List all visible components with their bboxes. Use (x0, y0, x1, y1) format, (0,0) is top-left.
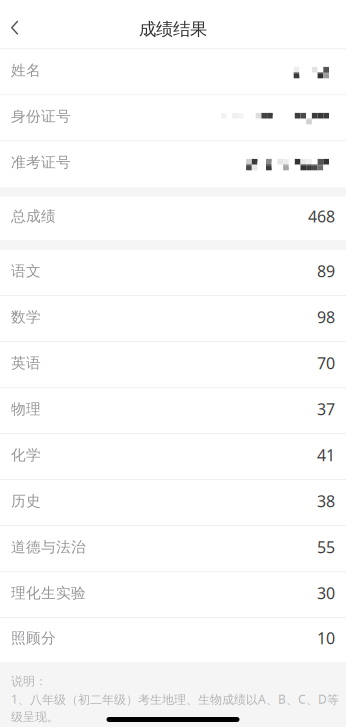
button[interactable]: 语文 (0, 250, 346, 296)
button[interactable]: 总成绩 (0, 196, 346, 240)
staticText: 说明： (11, 674, 47, 689)
staticText: 总成绩 (11, 207, 56, 225)
staticText: 化学 (11, 446, 41, 464)
button[interactable]: 历史 (0, 480, 346, 526)
button[interactable]: 物理 (0, 388, 346, 434)
staticText: 理化生实验 (11, 584, 86, 602)
staticText: 89 (317, 260, 335, 282)
button[interactable]: 化学 (0, 434, 346, 480)
staticText: 55 (317, 536, 335, 558)
staticText: 30 (317, 582, 335, 604)
staticText: 98 (317, 306, 335, 328)
staticText: 10 (317, 627, 335, 649)
staticText: 物理 (11, 400, 41, 418)
staticText: 道德与法治 (11, 538, 86, 556)
button[interactable]: 姓名 (0, 49, 346, 95)
staticText: 成绩结果 (139, 18, 207, 40)
staticText: 姓名 (11, 61, 41, 79)
staticText: 70 (317, 352, 335, 374)
staticText: 照顾分 (11, 629, 56, 647)
button[interactable]: Back (0, 9, 39, 40)
staticText: 41 (317, 444, 335, 466)
staticText: 语文 (11, 262, 41, 280)
button[interactable]: 准考证号 (0, 141, 346, 187)
button[interactable]: 英语 (0, 342, 346, 388)
staticText: 身份证号 (11, 107, 71, 125)
staticText: 1、八年级（初二年级）考生地理、生物成绩以A、B、C、D等 (11, 691, 339, 707)
button[interactable]: 身份证号 (0, 95, 346, 141)
staticText: 37 (317, 398, 335, 420)
button[interactable]: 道德与法治 (0, 526, 346, 572)
staticText: 准考证号 (11, 153, 71, 171)
staticText: 468 (308, 206, 335, 227)
staticText: 英语 (11, 354, 41, 372)
staticText: 数学 (11, 308, 41, 326)
staticText: 历史 (11, 492, 41, 510)
staticText: 级呈现。 (11, 710, 59, 724)
button[interactable]: 照顾分 (0, 618, 346, 662)
button[interactable]: 数学 (0, 296, 346, 342)
staticText: 38 (317, 490, 335, 512)
button[interactable]: 理化生实验 (0, 572, 346, 618)
